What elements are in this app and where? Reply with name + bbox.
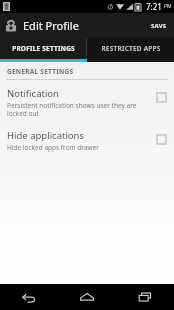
other: Profile lock <box>4 19 18 33</box>
staticText: Edit Profile <box>23 18 79 33</box>
staticText: 7:21 <box>146 1 162 12</box>
button[interactable]: Hide applications <box>0 126 174 155</box>
button[interactable]: Back <box>0 284 58 310</box>
staticText: Hide locked apps from drawer <box>7 143 99 152</box>
staticText: RESTRICTED APPS <box>101 44 161 53</box>
staticText: Notification <box>7 87 59 100</box>
button[interactable]: SAVE <box>144 16 174 36</box>
staticText: PM <box>164 3 172 10</box>
button[interactable]: Profile lock <box>0 16 85 35</box>
button[interactable]: Recent apps <box>116 284 174 310</box>
button[interactable]: RESTRICTED APPS <box>87 38 174 59</box>
staticText: Hide applications <box>7 129 85 142</box>
staticText: PROFILE SETTINGS <box>12 44 75 53</box>
button[interactable]: PROFILE SETTINGS <box>0 38 86 59</box>
button[interactable]: Notification <box>0 84 174 121</box>
button[interactable]: Notification checkbox <box>154 90 168 104</box>
button[interactable]: Home <box>58 284 116 310</box>
staticText: Persistent notification shows user they … <box>7 101 137 118</box>
button[interactable]: Hide applications checkbox <box>154 132 168 146</box>
staticText: SAVE <box>151 22 167 30</box>
staticText: GENERAL SETTINGS <box>7 67 74 76</box>
